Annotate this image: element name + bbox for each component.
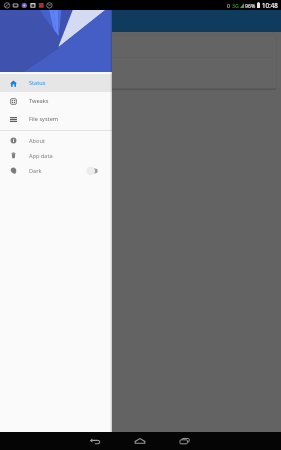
button[interactable]: App data: [0, 148, 112, 163]
staticText: 0: [227, 2, 230, 9]
staticText: App data: [29, 152, 53, 160]
button[interactable]: Back: [80, 432, 110, 450]
button[interactable]: File system: [0, 110, 112, 128]
staticText: Tweaks: [29, 97, 49, 105]
staticText: Dark: [29, 167, 42, 175]
button[interactable]: Home: [125, 432, 155, 450]
button[interactable]: About: [0, 133, 112, 148]
staticText: 96%: [245, 2, 256, 9]
staticText: File system: [29, 115, 59, 123]
staticText: 3G: [232, 2, 239, 9]
staticText: 10:48: [262, 1, 278, 9]
button[interactable]: Tweaks: [0, 92, 112, 110]
staticText: Status: [29, 79, 46, 87]
button[interactable]: Status: [0, 74, 112, 92]
staticText: About: [29, 137, 45, 145]
button[interactable]: Recent apps: [170, 432, 200, 450]
button[interactable]: Dark: [0, 163, 112, 178]
button[interactable]: [86, 166, 100, 176]
